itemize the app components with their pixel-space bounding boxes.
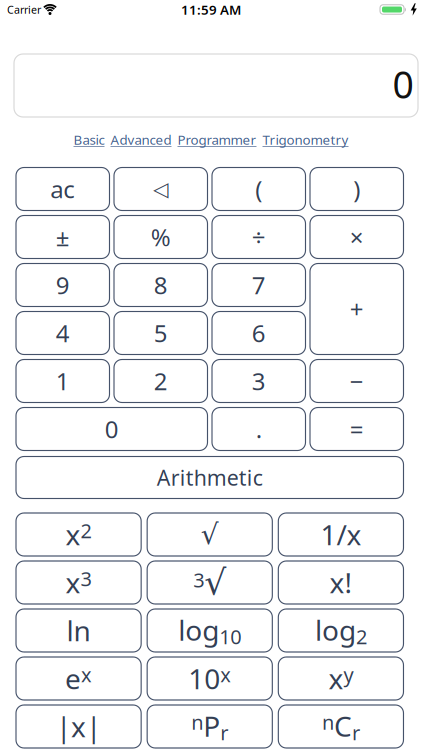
staticText: % (151, 221, 171, 253)
button[interactable]: × (310, 215, 403, 258)
staticText: ± (56, 221, 70, 253)
button[interactable]: x3 (16, 561, 141, 604)
staticText: 1/x (320, 516, 361, 553)
button[interactable]: 8 (114, 263, 207, 306)
button[interactable]: Trigonometry (262, 131, 348, 148)
button[interactable]: . (212, 407, 305, 450)
staticText: 0 (392, 59, 413, 109)
button[interactable]: x! (278, 561, 403, 604)
button[interactable]: 7 (212, 263, 305, 306)
staticText: ex (65, 660, 92, 697)
button[interactable]: |x| (16, 705, 141, 748)
staticText: − (350, 365, 364, 397)
staticText: Trigonometry (262, 131, 348, 148)
button[interactable]: Arithmetic (16, 456, 403, 498)
button[interactable]: 3 (212, 359, 305, 402)
staticText: Arithmetic (157, 463, 263, 492)
staticText: 10x (188, 660, 231, 697)
staticText: Programmer (177, 131, 256, 148)
staticText: ln (67, 612, 91, 649)
staticText: Basic (73, 131, 104, 148)
button[interactable]: Advanced (110, 131, 171, 148)
staticText: nPr (191, 707, 228, 746)
button[interactable]: xy (278, 657, 403, 700)
staticText: log10 (178, 611, 241, 650)
button[interactable]: 1 (16, 359, 109, 402)
button[interactable]: ÷ (212, 215, 305, 258)
staticText: log2 (315, 611, 367, 650)
button[interactable]: Programmer (177, 131, 256, 148)
staticText: 8 (154, 269, 168, 301)
staticText: = (350, 413, 364, 445)
staticText: . (256, 413, 262, 445)
staticText: |x| (56, 708, 101, 745)
staticText: ◁ (153, 178, 168, 200)
staticText: Advanced (110, 131, 171, 148)
staticText: × (350, 221, 364, 253)
staticText: √ (201, 519, 219, 550)
staticText: + (350, 293, 364, 325)
button[interactable]: ex (16, 657, 141, 700)
button[interactable]: Basic (73, 131, 104, 148)
staticText: 6 (252, 317, 266, 349)
staticText: ) (353, 173, 360, 205)
staticText: ( (255, 173, 262, 205)
button[interactable]: √ (147, 513, 272, 556)
button[interactable]: 0 (16, 407, 207, 450)
staticText: 3 (252, 365, 266, 397)
button[interactable]: log2 (278, 609, 403, 652)
staticText: ac (50, 173, 75, 205)
button[interactable]: 3√ (147, 561, 272, 604)
button[interactable]: x2 (16, 513, 141, 556)
button[interactable]: nPr (147, 705, 272, 748)
button[interactable]: ) (310, 167, 403, 210)
staticText: 1 (56, 365, 70, 397)
button[interactable]: 4 (16, 311, 109, 354)
staticText: 11:59 AM (181, 1, 241, 18)
button[interactable]: + (310, 263, 403, 354)
staticText: 5 (154, 317, 168, 349)
staticText: x3 (66, 564, 92, 601)
staticText: x! (329, 564, 352, 601)
staticText: 9 (56, 269, 70, 301)
staticText: 7 (252, 269, 266, 301)
staticText: xy (328, 660, 353, 697)
button[interactable]: 5 (114, 311, 207, 354)
button[interactable]: − (310, 359, 403, 402)
button[interactable]: 1/x (278, 513, 403, 556)
staticText: Carrier (7, 2, 41, 17)
button[interactable]: ± (16, 215, 109, 258)
button[interactable]: Delete (114, 167, 207, 210)
button[interactable]: nCr (278, 705, 403, 748)
button[interactable]: log10 (147, 609, 272, 652)
staticText: 3√ (193, 563, 226, 602)
staticText: 2 (154, 365, 168, 397)
staticText: x2 (66, 516, 92, 553)
staticText: 4 (56, 317, 70, 349)
button[interactable]: ac (16, 167, 109, 210)
button[interactable]: 2 (114, 359, 207, 402)
button[interactable]: 9 (16, 263, 109, 306)
button[interactable]: % (114, 215, 207, 258)
button[interactable]: = (310, 407, 403, 450)
button[interactable]: 6 (212, 311, 305, 354)
button[interactable]: ( (212, 167, 305, 210)
button[interactable]: ln (16, 609, 141, 652)
staticText: 0 (105, 413, 119, 445)
staticText: ÷ (252, 221, 266, 253)
staticText: nCr (322, 707, 360, 746)
button[interactable]: 10x (147, 657, 272, 700)
